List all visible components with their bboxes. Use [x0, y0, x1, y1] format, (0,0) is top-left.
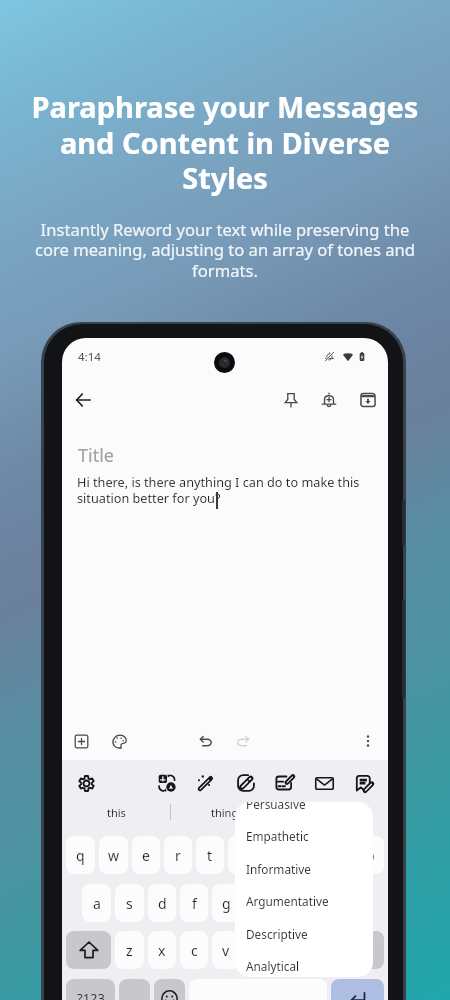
staticText: thing — [211, 805, 239, 820]
staticText: Hi there, is there anything I can do to … — [77, 473, 367, 507]
staticText: j — [288, 894, 292, 913]
button[interactable]: Informative — [235, 852, 373, 885]
button[interactable]: Numbers — [66, 979, 115, 1000]
staticText: Paraphrase your Messages and Content in … — [16, 87, 434, 197]
staticText: this — [107, 805, 126, 820]
staticText: v — [222, 941, 230, 960]
button[interactable]: Edit note — [268, 766, 302, 800]
staticText: Empathetic — [246, 828, 309, 844]
button[interactable]: Comma — [119, 979, 150, 1000]
button[interactable]: e — [132, 836, 160, 874]
button[interactable]: thing — [171, 803, 279, 821]
button[interactable]: this — [62, 803, 170, 821]
staticText: Descriptive — [246, 926, 308, 942]
button[interactable]: Add content — [64, 724, 98, 758]
button[interactable]: More options — [351, 724, 385, 758]
button[interactable]: Persuasive — [235, 802, 373, 820]
staticText: r — [175, 846, 181, 865]
button[interactable]: v — [212, 931, 240, 969]
button[interactable]: Compose — [347, 766, 381, 800]
staticText: e — [142, 846, 150, 865]
button[interactable]: Pin — [274, 383, 308, 417]
staticText: Title — [78, 443, 114, 468]
button[interactable]: d — [148, 884, 176, 922]
button[interactable]: Backspace — [340, 931, 384, 969]
staticText: d — [158, 894, 167, 913]
button[interactable]: z — [115, 931, 144, 969]
button[interactable]: Edit — [229, 766, 263, 800]
button[interactable]: Emoji — [154, 979, 185, 1000]
button[interactable]: w — [99, 836, 128, 874]
button[interactable]: q — [66, 836, 95, 874]
staticText: Persuasive — [246, 802, 306, 812]
staticText: ?123 — [77, 989, 105, 1000]
button[interactable]: Shift — [66, 931, 111, 969]
button[interactable]: Mail — [307, 766, 341, 800]
button[interactable]: p — [356, 836, 384, 874]
button[interactable]: Keyboard settings — [69, 766, 103, 800]
button[interactable]: a — [82, 884, 111, 922]
button[interactable]: Undo — [189, 724, 223, 758]
staticText: Argumentative — [246, 893, 329, 909]
staticText: f — [192, 894, 197, 913]
button[interactable]: Archive — [351, 383, 385, 417]
button[interactable]: u — [260, 836, 288, 874]
button[interactable]: i — [292, 836, 320, 874]
button[interactable]: t — [196, 836, 224, 874]
button[interactable]: the — [280, 803, 388, 821]
staticText: a — [93, 894, 101, 913]
button[interactable]: c — [180, 931, 208, 969]
button[interactable]: Add reminder — [312, 383, 346, 417]
staticText: s — [126, 894, 133, 913]
button[interactable]: Analytical — [235, 949, 373, 977]
button[interactable]: Argumentative — [235, 884, 373, 917]
staticText: 4:14 — [78, 349, 101, 365]
button[interactable]: Back — [66, 383, 100, 417]
button[interactable]: Translate — [150, 766, 184, 800]
staticText: q — [76, 846, 85, 865]
staticText: h — [254, 894, 263, 913]
button[interactable]: Magic rewrite — [189, 766, 223, 800]
button[interactable]: x — [148, 931, 176, 969]
button[interactable]: f — [180, 884, 208, 922]
staticText: w — [108, 846, 120, 865]
button[interactable]: Colour palette — [102, 724, 136, 758]
staticText: c — [191, 941, 198, 960]
staticText: t — [207, 846, 213, 865]
staticText: z — [126, 941, 133, 960]
staticText: Analytical — [246, 958, 300, 974]
button[interactable]: b — [244, 931, 272, 969]
staticText: Informative — [246, 861, 311, 877]
button[interactable]: g — [212, 884, 240, 922]
button[interactable]: Redo — [226, 724, 260, 758]
button[interactable]: Descriptive — [235, 917, 373, 950]
staticText: k — [318, 894, 326, 913]
button[interactable]: k — [308, 884, 336, 922]
staticText: g — [222, 894, 231, 913]
button[interactable]: y — [228, 836, 256, 874]
button[interactable]: j — [276, 884, 304, 922]
staticText: p — [366, 846, 375, 865]
button[interactable]: Empathetic — [235, 819, 373, 852]
button[interactable]: n — [276, 931, 304, 969]
button[interactable]: Enter — [331, 979, 384, 1000]
button[interactable]: h — [244, 884, 272, 922]
staticText: x — [158, 941, 166, 960]
button[interactable]: r — [164, 836, 192, 874]
staticText: Instantly Reword your text while preserv… — [30, 218, 420, 282]
button[interactable]: s — [115, 884, 144, 922]
